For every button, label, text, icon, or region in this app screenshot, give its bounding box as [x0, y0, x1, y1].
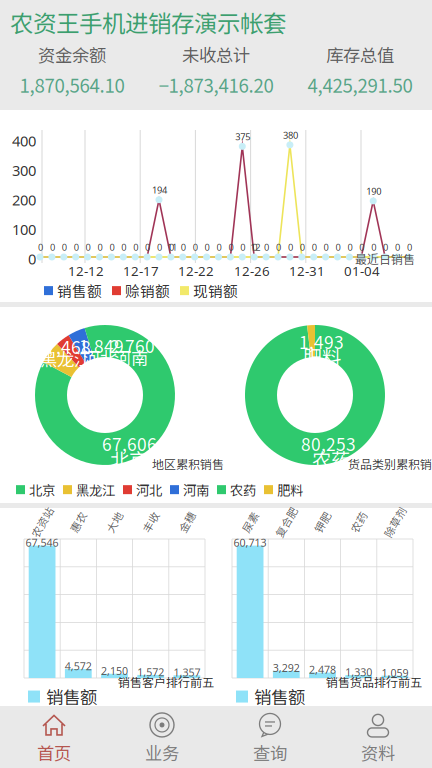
staticText: 销售客户排行前五 [118, 673, 214, 690]
staticText: 河北 [83, 345, 117, 370]
staticText: 农资站 [26, 514, 59, 530]
staticText: 未收总计 [182, 42, 250, 67]
staticText: 大地 [103, 514, 125, 530]
staticText: 农资王手机进销存演示帐套 [10, 5, 286, 39]
staticText: 2,478 [309, 663, 336, 677]
staticText: 12-22 [178, 262, 214, 280]
staticText: 0 [181, 241, 186, 253]
staticText: 7,468 [46, 334, 91, 359]
staticText: 0 [205, 241, 210, 253]
staticText: 0 [252, 241, 257, 253]
staticText: 赊销额 [125, 280, 170, 301]
staticText: 1,870,564.10 [19, 71, 124, 98]
staticText: 农药 [312, 445, 350, 473]
staticText: 2,760 [110, 333, 155, 358]
staticText: 0 [395, 241, 400, 253]
button[interactable]: 业务 [108, 710, 216, 768]
staticText: 钾肥 [311, 514, 333, 530]
staticText: 1,849 [79, 333, 124, 358]
staticText: 惠农 [67, 514, 89, 530]
staticText: 194 [152, 184, 167, 196]
staticText: 0 [38, 241, 43, 253]
staticText: 现销额 [193, 280, 238, 301]
staticText: −1,873,416.20 [158, 71, 273, 98]
staticText: 100 [12, 219, 36, 239]
staticText: 销售额 [46, 684, 97, 709]
staticText: 北京 [29, 480, 55, 499]
staticText: 12-31 [289, 262, 325, 280]
staticText: 1,059 [381, 666, 408, 680]
staticText: 0 [407, 241, 412, 253]
staticText: 80,253 [301, 431, 356, 456]
staticText: 0 [193, 241, 198, 253]
staticText: 0 [228, 241, 233, 253]
staticText: 1,357 [173, 665, 200, 679]
button[interactable]: 查询 [216, 710, 324, 768]
staticText: 4,572 [65, 659, 92, 673]
staticText: 尿素 [239, 514, 261, 530]
staticText: 67,606 [102, 431, 157, 456]
staticText: 1,330 [345, 665, 372, 679]
staticText: 0 [62, 241, 67, 253]
staticText: 67,546 [26, 536, 59, 550]
staticText: 金穗 [176, 514, 198, 530]
staticText: 3,292 [273, 661, 300, 675]
staticText: 0 [359, 241, 364, 253]
staticText: 资金余额 [38, 42, 106, 67]
staticText: 肥料 [303, 342, 341, 370]
staticText: 0 [300, 241, 305, 253]
staticText: 0 [28, 249, 36, 268]
staticText: 0 [109, 241, 114, 253]
staticText: 12-17 [123, 262, 159, 280]
staticText: 0 [264, 241, 269, 253]
staticText: 01-04 [344, 262, 380, 280]
staticText: 0 [145, 241, 150, 253]
staticText: 200 [12, 190, 36, 209]
staticText: 0 [121, 241, 126, 253]
staticText: 12 [250, 241, 260, 253]
staticText: 0 [324, 241, 329, 253]
staticText: 黑龙江 [76, 480, 115, 499]
staticText: 除草剂 [378, 514, 411, 530]
staticText: 0 [50, 241, 55, 253]
staticText: 0 [169, 241, 174, 253]
staticText: 380 [283, 129, 298, 141]
staticText: 查询 [253, 740, 287, 765]
staticText: 丰收 [140, 514, 162, 530]
staticText: 1,493 [299, 329, 344, 354]
staticText: 0 [288, 241, 293, 253]
staticText: 4,425,291.50 [307, 71, 412, 98]
staticText: 库存总值 [326, 42, 394, 67]
staticText: 最近日销售 [355, 250, 415, 267]
staticText: 12-12 [68, 262, 104, 280]
staticText: 375 [235, 130, 250, 143]
staticText: 销售货品排行前五 [326, 673, 422, 690]
staticText: 农药 [230, 480, 256, 499]
staticText: 190 [366, 185, 381, 197]
staticText: 0 [216, 241, 221, 253]
staticText: 农药 [348, 514, 370, 530]
staticText: 0 [383, 241, 388, 253]
staticText: 0 [74, 241, 79, 253]
staticText: 400 [12, 131, 36, 150]
button[interactable]: 首页 [0, 710, 108, 768]
staticText: 河南 [183, 480, 209, 499]
staticText: 复合肥 [270, 514, 303, 530]
staticText: 0 [133, 241, 138, 253]
staticText: 黑龙江 [40, 346, 91, 371]
staticText: 0 [240, 241, 245, 253]
staticText: 销售额 [254, 684, 305, 709]
staticText: 11 [167, 241, 177, 253]
staticText: 资料 [361, 740, 395, 765]
staticText: 12-26 [234, 262, 270, 280]
staticText: 0 [86, 241, 91, 253]
staticText: 60,713 [234, 536, 267, 550]
staticText: 0 [347, 241, 352, 253]
staticText: 肥料 [277, 480, 303, 499]
staticText: 0 [335, 241, 340, 253]
staticText: 销售额 [57, 280, 102, 301]
staticText: 业务 [145, 740, 179, 765]
staticText: 0 [97, 241, 102, 253]
staticText: 300 [12, 160, 36, 180]
button[interactable]: 资料 [324, 710, 432, 768]
